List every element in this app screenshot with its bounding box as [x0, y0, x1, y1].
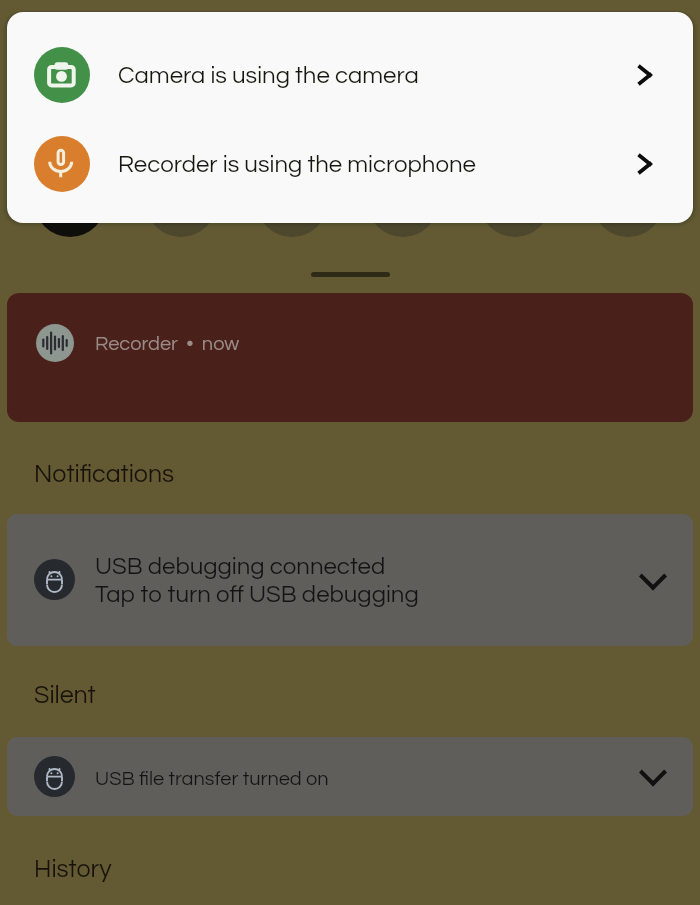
staticText: USB debugging connected: [95, 554, 386, 579]
button[interactable]: USB debugging connected: [7, 514, 693, 646]
staticText: Tap to turn off USB debugging: [95, 582, 419, 607]
button[interactable]: Recorder is using the microphone: [7, 120, 693, 208]
button[interactable]: Silent: [34, 682, 96, 708]
button[interactable]: USB file transfer turned on: [7, 737, 693, 816]
staticText: Silent: [34, 682, 96, 708]
other: Open details: [630, 149, 660, 179]
button[interactable]: Expand notification: [635, 564, 671, 600]
staticText: Recorder • now: [95, 334, 240, 355]
button[interactable]: Recorder • now: [7, 293, 693, 422]
staticText: History: [34, 856, 112, 882]
button[interactable]: History: [34, 856, 112, 882]
staticText: Recorder is using the microphone: [118, 152, 630, 177]
button[interactable]: Camera is using the camera: [7, 31, 693, 119]
button[interactable]: Expand notification: [635, 760, 671, 796]
staticText: USB file transfer turned on: [95, 769, 329, 790]
button[interactable]: Notifications: [34, 461, 175, 487]
other: Open details: [630, 60, 660, 90]
staticText: Notifications: [34, 461, 175, 487]
staticText: Camera is using the camera: [118, 63, 630, 88]
